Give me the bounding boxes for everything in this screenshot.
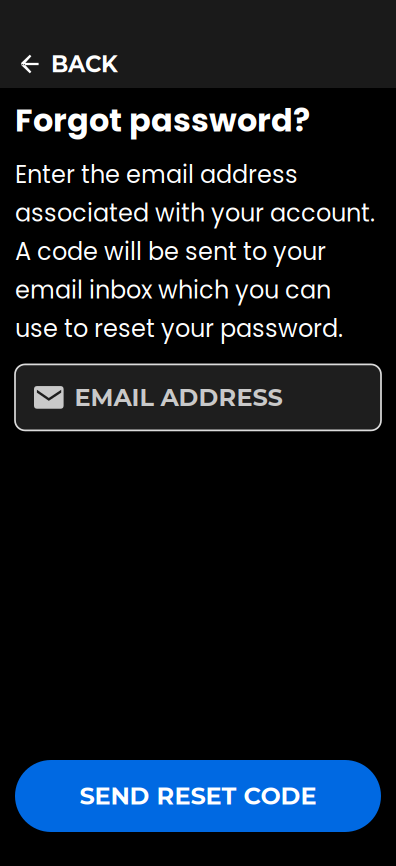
staticText: BACK xyxy=(51,50,118,78)
button[interactable]: BACK xyxy=(0,0,396,88)
button[interactable]: SEND RESET CODE xyxy=(15,760,381,832)
staticText: EMAIL ADDRESS xyxy=(75,383,283,412)
staticText: Enter the email address associated with … xyxy=(15,158,375,345)
staticText: Forgot password? xyxy=(15,98,310,143)
staticText: SEND RESET CODE xyxy=(79,781,316,811)
button[interactable]: EMAIL ADDRESS xyxy=(15,364,381,430)
